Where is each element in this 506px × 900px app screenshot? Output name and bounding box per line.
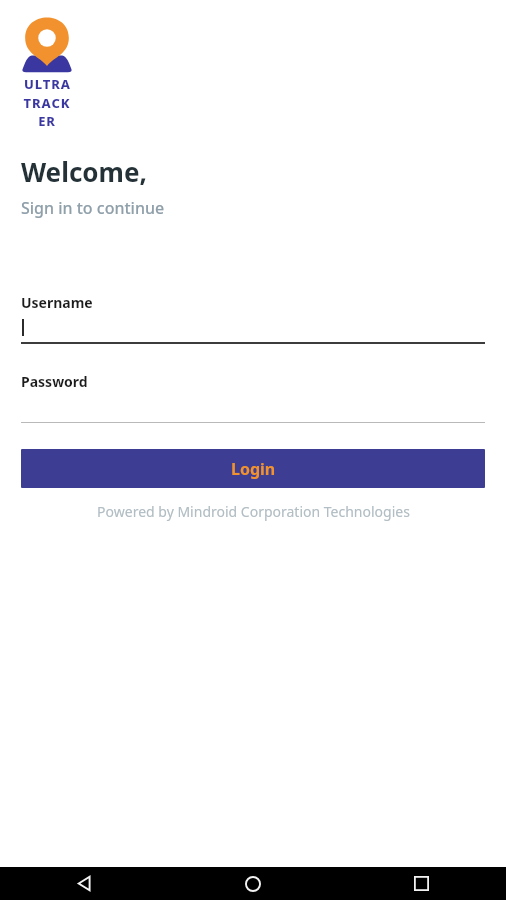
- button[interactable]: Recent apps: [337, 867, 506, 900]
- button[interactable]: Login: [21, 449, 485, 488]
- button[interactable]: [21, 391, 485, 423]
- staticText: Sign in to continue: [21, 197, 165, 219]
- button[interactable]: Back: [0, 867, 168, 900]
- staticText: Password: [21, 372, 88, 391]
- button[interactable]: Home: [168, 867, 337, 900]
- staticText: ULTRA: [24, 75, 71, 93]
- button[interactable]: [21, 312, 485, 344]
- staticText: Username: [21, 293, 93, 312]
- staticText: TRACKER: [21, 94, 73, 130]
- staticText: Login: [231, 458, 276, 480]
- staticText: Powered by Mindroid Corporation Technolo…: [97, 502, 410, 521]
- staticText: Welcome,: [21, 154, 147, 189]
